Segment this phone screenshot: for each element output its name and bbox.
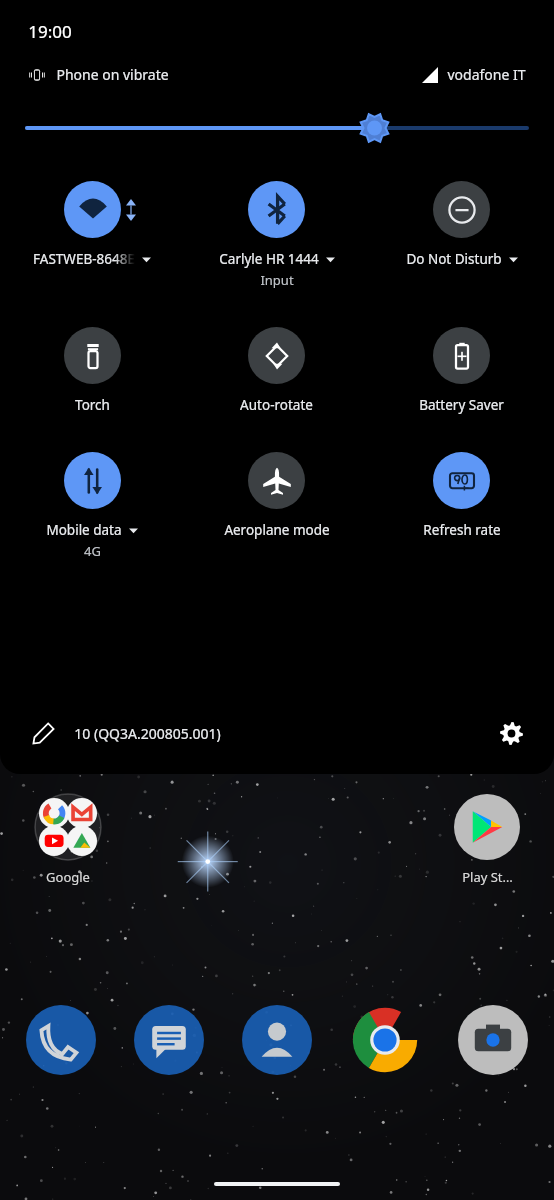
staticText: Carlyle HR 1444	[219, 250, 319, 268]
button[interactable]: Brightness	[27, 112, 527, 144]
button[interactable]: Google	[26, 794, 110, 886]
staticText: 10 (QQ3A.200805.001)	[74, 724, 221, 743]
staticText: 19:00	[28, 20, 72, 43]
button[interactable]: Mobile data	[0, 452, 184, 560]
staticText: Mobile data	[46, 521, 122, 539]
button[interactable]: Auto-rotate	[184, 327, 369, 414]
button[interactable]: Refresh rate	[369, 452, 554, 539]
button[interactable]: Contacts	[242, 1005, 312, 1075]
button[interactable]: Messages	[134, 1005, 204, 1075]
button[interactable]: Play St…	[445, 794, 529, 886]
staticText: Auto-rotate	[240, 396, 313, 414]
staticText: Play St…	[462, 868, 513, 886]
button[interactable]: Do Not Disturb	[369, 181, 554, 268]
staticText: Google	[46, 868, 90, 886]
staticText: 4G	[84, 542, 101, 560]
staticText: Torch	[75, 396, 110, 414]
staticText: Input	[260, 271, 294, 289]
staticText: Phone on vibrate	[56, 65, 169, 84]
button[interactable]: Carlyle HR 1444	[184, 181, 369, 289]
button[interactable]: Chrome	[350, 1005, 420, 1075]
button[interactable]: Torch	[0, 327, 184, 414]
button[interactable]: Edit	[26, 716, 60, 750]
staticText: FASTWEB-8648E	[33, 250, 135, 268]
button[interactable]: FASTWEB-8648E	[0, 181, 184, 268]
button[interactable]: Battery Saver	[369, 327, 554, 414]
button[interactable]: Camera	[458, 1005, 528, 1075]
staticText: Aeroplane mode	[224, 521, 330, 539]
button[interactable]: Phone	[26, 1005, 96, 1075]
button[interactable]: Settings	[494, 716, 528, 750]
staticText: Do Not Disturb	[406, 250, 502, 268]
button[interactable]: Aeroplane mode	[184, 452, 369, 539]
staticText: Battery Saver	[419, 396, 504, 414]
staticText: vodafone IT	[447, 65, 526, 84]
staticText: Refresh rate	[423, 521, 501, 539]
